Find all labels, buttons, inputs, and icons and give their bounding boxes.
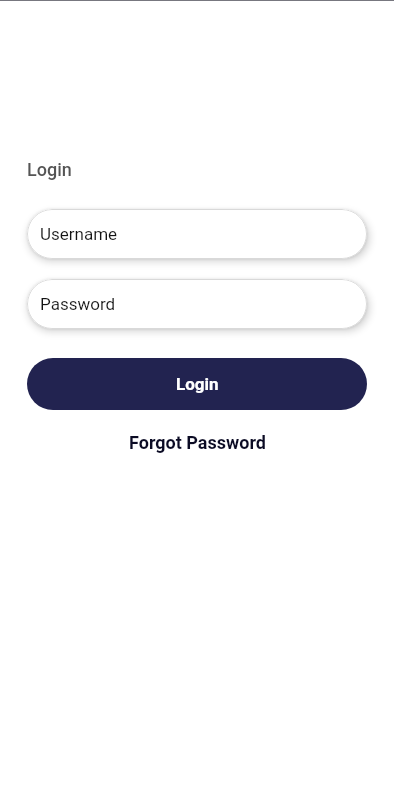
- staticText: Password: [40, 294, 116, 314]
- button[interactable]: Password: [27, 279, 367, 329]
- staticText: Login: [176, 374, 219, 394]
- staticText: Login: [27, 159, 72, 180]
- button[interactable]: Username: [27, 209, 367, 259]
- staticText: Forgot Password: [129, 432, 266, 453]
- button[interactable]: Forgot Password: [27, 432, 367, 453]
- staticText: Username: [40, 224, 118, 244]
- button[interactable]: Login: [27, 358, 367, 410]
